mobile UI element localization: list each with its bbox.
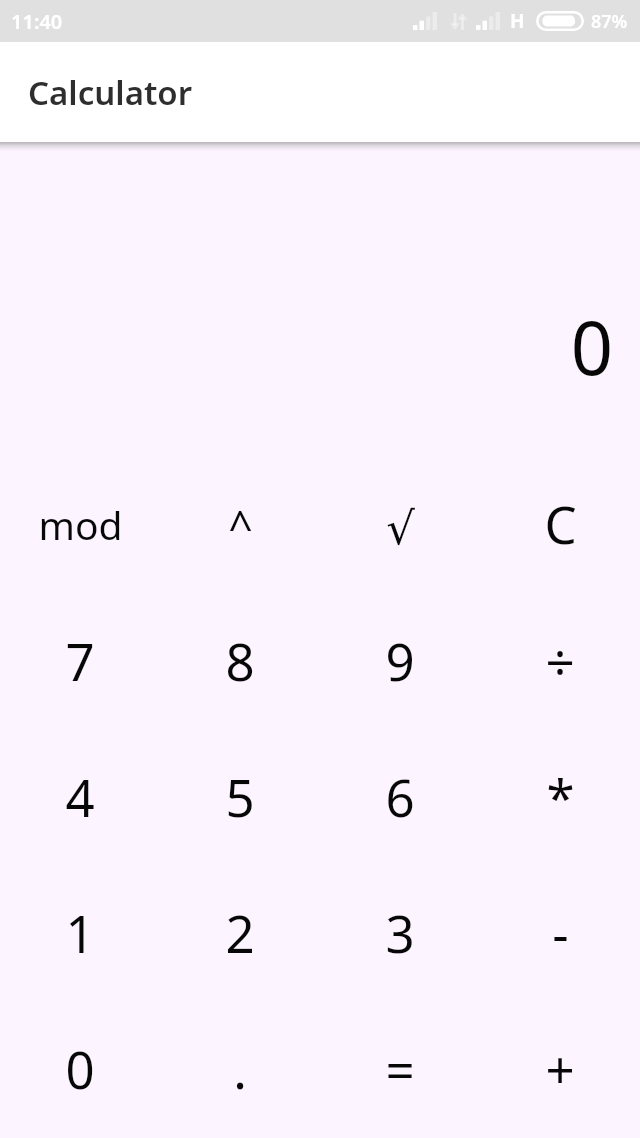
button[interactable]: decimal point: [160, 1000, 320, 1136]
button[interactable]: 6: [320, 728, 480, 864]
button[interactable]: 5: [160, 728, 320, 864]
button[interactable]: 3: [320, 864, 480, 1000]
button[interactable]: 9: [320, 592, 480, 728]
button[interactable]: minus: [480, 864, 640, 1000]
button[interactable]: 0: [0, 1000, 160, 1136]
staticText: 5: [225, 762, 255, 831]
staticText: =: [385, 1034, 415, 1103]
staticText: 0: [65, 1034, 95, 1103]
button[interactable]: 4: [0, 728, 160, 864]
staticText: 6: [385, 762, 415, 831]
button[interactable]: 8: [160, 592, 320, 728]
button[interactable]: plus: [480, 1000, 640, 1136]
staticText: ÷: [545, 626, 575, 695]
staticText: ^: [228, 497, 253, 556]
staticText: 9: [385, 626, 415, 695]
staticText: 2: [225, 898, 255, 967]
button[interactable]: 7: [0, 592, 160, 728]
staticText: +: [545, 1034, 575, 1103]
staticText: -: [552, 898, 569, 967]
staticText: √: [386, 502, 415, 554]
staticText: C: [544, 489, 577, 558]
staticText: H: [510, 8, 525, 34]
staticText: 8: [225, 626, 255, 695]
button[interactable]: square root: [320, 455, 480, 592]
button[interactable]: equals: [320, 1000, 480, 1136]
staticText: 87%: [591, 9, 628, 34]
staticText: 3: [385, 898, 415, 967]
staticText: 0: [570, 296, 613, 397]
button[interactable]: 2: [160, 864, 320, 1000]
staticText: 1: [65, 898, 95, 967]
staticText: Calculator: [28, 70, 193, 115]
staticText: 7: [65, 626, 95, 695]
staticText: 11:40: [11, 8, 63, 35]
staticText: mod: [38, 498, 123, 551]
button[interactable]: 1: [0, 864, 160, 1000]
button[interactable]: clear: [480, 455, 640, 592]
button[interactable]: power: [160, 455, 320, 592]
staticText: 4: [65, 762, 95, 831]
staticText: *: [546, 762, 575, 831]
staticText: .: [233, 1034, 247, 1103]
button[interactable]: divide: [480, 592, 640, 728]
button[interactable]: multiply: [480, 728, 640, 864]
button[interactable]: modulo: [0, 455, 160, 592]
